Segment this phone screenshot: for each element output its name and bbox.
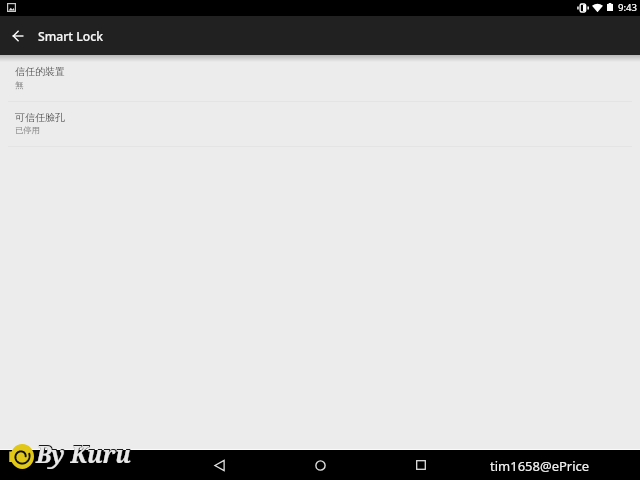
button[interactable]: Navigate up — [0, 16, 36, 55]
staticText: 無 — [15, 80, 24, 90]
staticText: 已停用 — [15, 125, 40, 135]
button[interactable]: Home — [305, 450, 335, 480]
staticText: 9:43 — [618, 1, 638, 14]
button[interactable]: Back — [204, 450, 234, 480]
button[interactable]: 信任的裝置 — [0, 57, 640, 101]
staticText: tim1658@ePrice — [490, 457, 590, 475]
staticText: By Kuru — [36, 437, 131, 468]
staticText: Smart Lock — [38, 28, 103, 45]
staticText: 信任的裝置 — [15, 65, 65, 78]
staticText: By Kuru — [36, 438, 131, 469]
button[interactable]: Recent apps — [406, 450, 436, 480]
staticText: By Kuru — [36, 438, 131, 469]
staticText: 可信任臉孔 — [15, 111, 65, 124]
staticText: By Kuru — [37, 438, 132, 469]
staticText: By Kuru — [37, 437, 132, 468]
button[interactable]: 可信任臉孔 — [0, 102, 640, 146]
